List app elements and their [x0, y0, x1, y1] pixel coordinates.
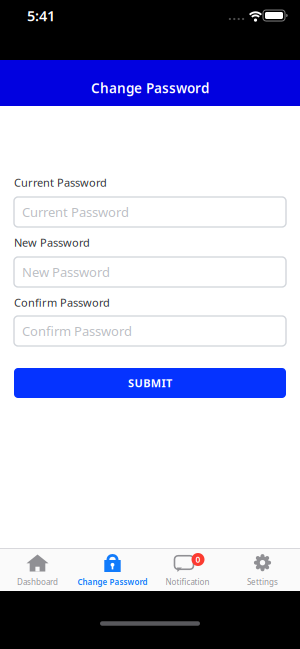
button[interactable]: New Password — [14, 257, 286, 287]
staticText: Settings — [247, 577, 278, 587]
staticText: New Password — [14, 235, 90, 250]
staticText: Change Password — [77, 577, 147, 587]
staticText: Current Password — [22, 203, 129, 221]
button[interactable]: Change Password — [75, 549, 150, 591]
button[interactable]: Confirm Password — [14, 316, 286, 346]
button[interactable]: SUBMIT — [14, 368, 286, 398]
staticText: Current Password — [14, 175, 107, 190]
staticText: Confirm Password — [22, 322, 132, 340]
button[interactable]: Current Password — [14, 197, 286, 227]
staticText: Notification — [165, 577, 209, 587]
staticText: New Password — [22, 263, 110, 281]
staticText: Dashboard — [17, 577, 58, 587]
staticText: Change Password — [91, 79, 209, 97]
button[interactable]: Settings — [225, 549, 300, 591]
staticText: 0 — [195, 554, 200, 565]
button[interactable]: 0 — [150, 549, 225, 591]
button[interactable]: Dashboard — [0, 549, 75, 591]
staticText: 5:41 — [27, 6, 55, 25]
staticText: SUBMIT — [128, 376, 172, 390]
staticText: Confirm Password — [14, 295, 110, 310]
